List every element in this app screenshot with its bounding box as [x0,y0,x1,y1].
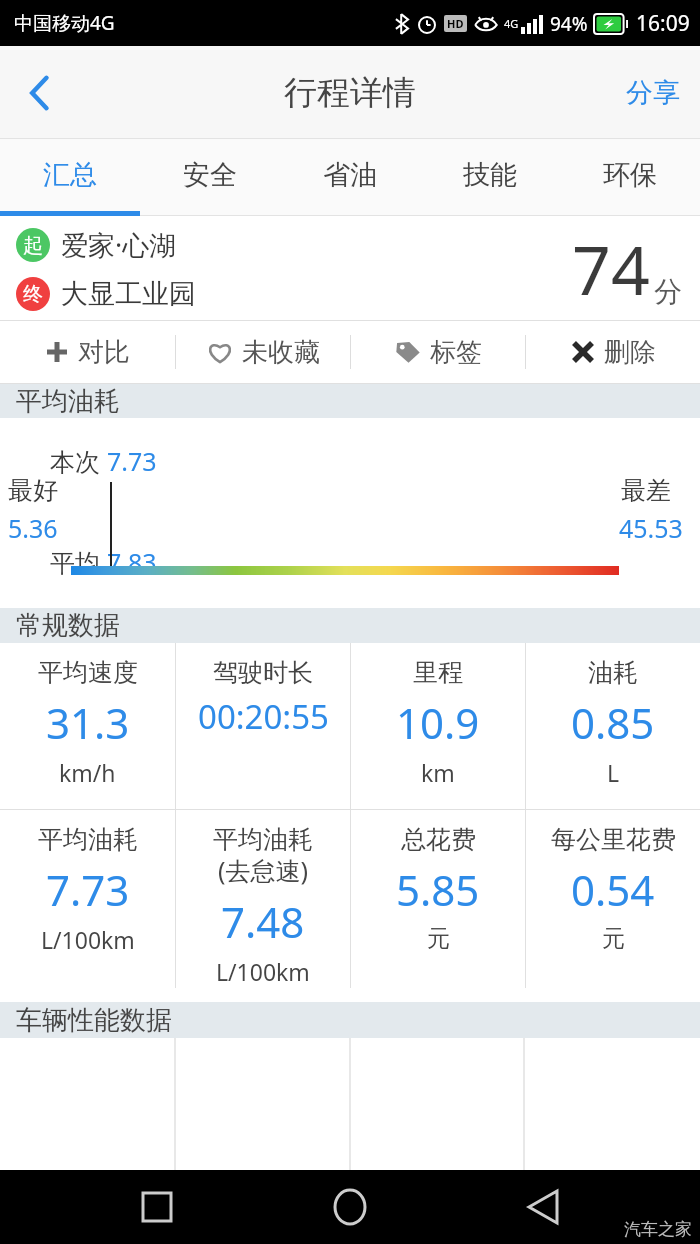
button[interactable]: Back [0,46,80,139]
staticText: 10.9 [396,694,480,751]
staticText: 平均 [50,545,107,579]
button[interactable]: 安全 [140,139,280,216]
staticText: 删除 [604,336,656,369]
staticText: 车辆性能数据 [16,1004,172,1037]
staticText: 分 [654,274,682,309]
staticText: 油耗 [588,657,638,688]
staticText: km/h [59,757,116,788]
staticText: 5.36 [8,511,58,545]
staticText: 驾驶时长 [213,657,313,688]
staticText: 31.3 [46,694,130,751]
staticText: 终 [23,282,43,307]
button[interactable]: 平均油耗 (去怠速) [176,810,350,988]
staticText: 0.85 [571,694,655,751]
staticText: HD [447,16,464,31]
staticText: L/100km [216,956,310,987]
button[interactable]: 对比 [0,321,175,383]
staticText: 每公里花费 [551,824,676,855]
button[interactable]: 油耗 [526,643,700,809]
button[interactable]: 平均速度 [0,643,175,809]
button[interactable]: 平均油耗 [0,810,175,988]
staticText: 5.85 [396,861,480,918]
staticText: 大显工业园 [61,277,196,311]
staticText: 总花费 [401,824,476,855]
button[interactable]: 未收藏 [176,321,350,383]
staticText: 行程详情 [284,72,416,114]
button[interactable]: 省油 [280,139,420,216]
staticText: 本次 [50,444,107,478]
button[interactable]: Back [507,1171,579,1243]
staticText: 平均油耗 (去怠速) [213,824,313,887]
staticText: 中国移动4G [14,10,115,36]
button[interactable]: 总花费 [351,810,525,988]
staticText: 对比 [78,336,130,369]
staticText: 未收藏 [242,336,320,369]
staticText: L/100km [41,924,135,955]
staticText: 省油 [323,158,377,192]
staticText: 45.53 [619,511,683,545]
button[interactable]: 删除 [526,321,700,383]
staticText: 94% [550,11,588,37]
button[interactable]: 环保 [560,139,700,216]
staticText: 环保 [603,158,657,192]
staticText: 4G [504,16,519,31]
staticText: 平均油耗 [16,385,120,418]
staticText: 汇总 [43,158,97,192]
staticText: 元 [602,924,625,953]
button[interactable]: 驾驶时长 [176,643,350,809]
staticText: 起 [23,233,43,258]
staticText: 平均速度 [38,657,138,688]
staticText: 0.54 [571,861,655,918]
staticText: 常规数据 [16,609,120,642]
staticText: 7.73 [46,861,130,918]
staticText: 7.48 [221,893,305,950]
button[interactable]: 分享 [606,46,700,139]
staticText: 技能 [463,158,517,192]
staticText: 16:09 [636,9,690,38]
staticText: 分享 [626,76,680,110]
staticText: 元 [427,924,450,953]
staticText: 7.83 [107,545,157,579]
button[interactable]: 汇总 [0,139,140,216]
staticText: 安全 [183,158,237,192]
staticText: km [421,757,455,788]
button[interactable]: 里程 [351,643,525,809]
staticText: 爱家·心湖 [61,226,177,263]
staticText: 平均油耗 [38,824,138,855]
staticText: 最好 [8,475,58,506]
button[interactable]: Recents [121,1171,193,1243]
staticText: 00:20:55 [198,694,329,739]
staticText: 最差 [621,475,671,506]
button[interactable]: 标签 [351,321,525,383]
button[interactable]: 技能 [420,139,560,216]
staticText: 汽车之家 [624,1219,692,1240]
button[interactable]: Home [314,1171,386,1243]
staticText: 74 [572,222,650,315]
staticText: 7.73 [107,444,157,478]
staticText: 标签 [430,336,482,369]
staticText: 里程 [413,657,463,688]
staticText: L [607,757,620,788]
button[interactable]: 每公里花费 [526,810,700,988]
